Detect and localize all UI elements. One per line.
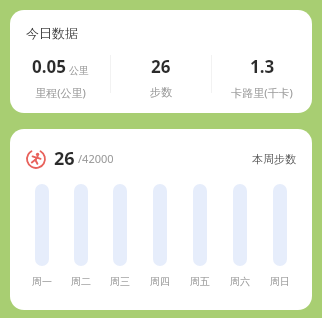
staticText: 1.3 bbox=[250, 55, 275, 78]
staticText: 周六 bbox=[230, 275, 250, 288]
button[interactable]: 今日数据 bbox=[10, 10, 312, 113]
staticText: 26 bbox=[54, 146, 75, 171]
staticText: 26 bbox=[151, 55, 171, 78]
staticText: 里程(公里) bbox=[35, 85, 86, 100]
staticText: 公里 bbox=[69, 64, 89, 77]
button[interactable]: Steps bbox=[26, 149, 46, 169]
button[interactable]: Steps bbox=[10, 129, 312, 310]
staticText: 周三 bbox=[110, 275, 130, 288]
staticText: /42000 bbox=[78, 151, 114, 166]
staticText: 周二 bbox=[71, 275, 91, 288]
staticText: 周四 bbox=[150, 275, 170, 288]
staticText: 卡路里(千卡) bbox=[231, 85, 293, 100]
staticText: 0.05 bbox=[32, 55, 66, 78]
staticText: 今日数据 bbox=[26, 25, 78, 41]
staticText: 周五 bbox=[190, 275, 210, 288]
staticText: 步数 bbox=[150, 85, 172, 99]
staticText: 本周步数 bbox=[252, 152, 296, 166]
staticText: 周一 bbox=[32, 275, 52, 288]
staticText: 周日 bbox=[270, 275, 290, 288]
